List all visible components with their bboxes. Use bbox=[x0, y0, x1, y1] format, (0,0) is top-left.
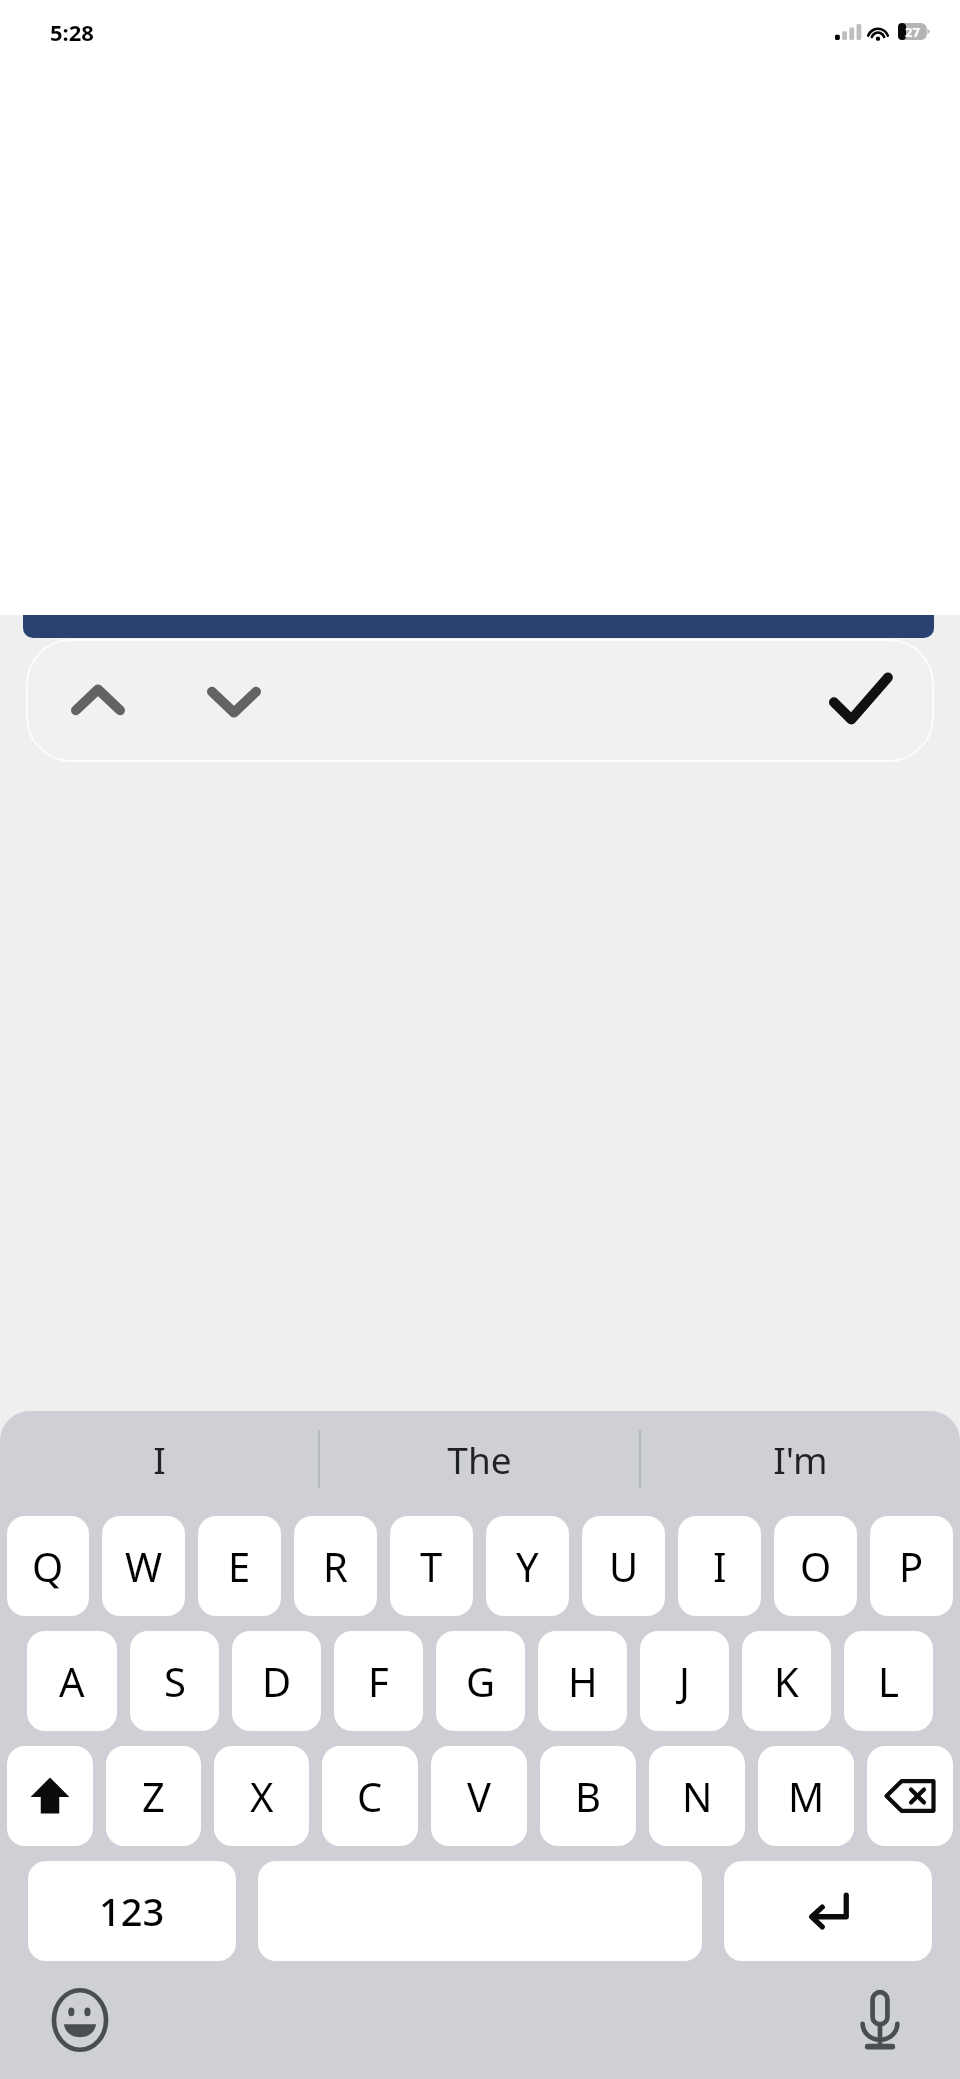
staticText: Y bbox=[516, 1539, 539, 1593]
button[interactable]: Emoji bbox=[40, 1980, 120, 2060]
staticText: Q bbox=[32, 1539, 64, 1593]
button[interactable]: Return bbox=[724, 1861, 932, 1961]
staticText: X bbox=[250, 1769, 274, 1823]
staticText: K bbox=[774, 1654, 799, 1708]
staticText: I'm bbox=[773, 1434, 828, 1484]
button[interactable]: I'm bbox=[641, 1411, 960, 1506]
staticText: A bbox=[59, 1654, 85, 1708]
staticText: Kelley Blue Book bbox=[90, 702, 281, 733]
button[interactable]: V bbox=[431, 1746, 527, 1846]
button[interactable]: I bbox=[0, 1411, 318, 1506]
button[interactable]: T bbox=[390, 1516, 473, 1616]
staticText: V bbox=[467, 1769, 491, 1823]
button[interactable]: The bbox=[320, 1411, 639, 1506]
button[interactable]: O bbox=[774, 1516, 857, 1616]
button[interactable]: L bbox=[844, 1631, 933, 1731]
button[interactable]: S bbox=[130, 1631, 219, 1731]
staticText: H bbox=[568, 1654, 598, 1708]
staticText: P bbox=[899, 1539, 924, 1593]
button[interactable]: G bbox=[436, 1631, 525, 1731]
button[interactable]: U bbox=[582, 1516, 665, 1616]
button[interactable]: E bbox=[198, 1516, 281, 1616]
button[interactable]: M bbox=[758, 1746, 854, 1846]
button[interactable]: Z bbox=[106, 1746, 201, 1846]
button[interactable]: A bbox=[27, 1631, 117, 1731]
button[interactable]: C bbox=[322, 1746, 418, 1846]
staticText: L bbox=[878, 1654, 899, 1708]
button[interactable]: R bbox=[294, 1516, 377, 1616]
button[interactable]: Space bbox=[258, 1861, 702, 1961]
staticText: M bbox=[788, 1769, 825, 1823]
staticText: I bbox=[713, 1539, 727, 1593]
button[interactable]: Next field bbox=[186, 653, 282, 749]
button[interactable]: F bbox=[334, 1631, 423, 1731]
button[interactable]: Done bbox=[812, 653, 908, 749]
button[interactable]: Voice input bbox=[840, 1980, 920, 2060]
staticText: N bbox=[682, 1769, 713, 1823]
staticText: U bbox=[609, 1539, 639, 1593]
button[interactable]: H bbox=[538, 1631, 627, 1731]
button[interactable]: Previous field bbox=[50, 653, 146, 749]
button[interactable]: W bbox=[102, 1516, 185, 1616]
staticText: O bbox=[800, 1539, 832, 1593]
button[interactable]: Y bbox=[486, 1516, 569, 1616]
staticText: T bbox=[420, 1539, 443, 1593]
button[interactable]: N bbox=[649, 1746, 745, 1846]
button[interactable]: P bbox=[870, 1516, 953, 1616]
staticText: 123 bbox=[99, 1885, 165, 1937]
button[interactable]: J bbox=[640, 1631, 729, 1731]
button[interactable]: Q bbox=[7, 1516, 89, 1616]
staticText: I bbox=[153, 1434, 166, 1484]
staticText: Z bbox=[142, 1769, 165, 1823]
staticText: 27 bbox=[905, 23, 920, 40]
button[interactable]: 123 bbox=[28, 1861, 236, 1961]
staticText: R bbox=[323, 1539, 348, 1593]
staticText: D bbox=[262, 1654, 292, 1708]
staticText: F bbox=[368, 1654, 389, 1708]
button[interactable]: Shift bbox=[7, 1746, 93, 1846]
staticText: C bbox=[357, 1769, 383, 1823]
button[interactable]: I bbox=[678, 1516, 761, 1616]
staticText: S bbox=[164, 1654, 186, 1708]
staticText: 5:28 bbox=[50, 17, 94, 47]
button[interactable]: D bbox=[232, 1631, 321, 1731]
staticText: The bbox=[447, 1434, 512, 1484]
staticText: W bbox=[125, 1539, 163, 1593]
staticText: J bbox=[679, 1654, 690, 1708]
staticText: E bbox=[228, 1539, 251, 1593]
button[interactable]: X bbox=[214, 1746, 309, 1846]
staticText: B bbox=[575, 1769, 601, 1823]
button[interactable]: Backspace bbox=[867, 1746, 953, 1846]
button[interactable]: K bbox=[742, 1631, 831, 1731]
button[interactable]: B bbox=[540, 1746, 636, 1846]
staticText: G bbox=[466, 1654, 496, 1708]
